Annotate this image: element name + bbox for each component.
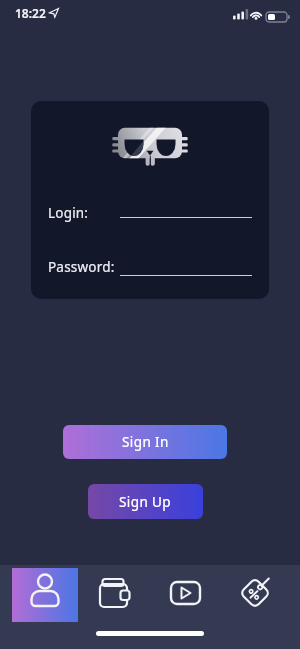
- button[interactable]: [156, 575, 214, 617]
- staticText: Login:: [48, 204, 89, 222]
- button[interactable]: [12, 568, 78, 622]
- button[interactable]: Sign Up: [88, 484, 203, 519]
- button[interactable]: Sign In: [63, 425, 227, 459]
- staticText: 18:22: [15, 5, 46, 21]
- staticText: Password:: [48, 258, 115, 276]
- button[interactable]: [85, 575, 143, 617]
- staticText: Sign In: [122, 433, 169, 451]
- staticText: Sign Up: [119, 493, 172, 511]
- button[interactable]: [226, 575, 284, 617]
